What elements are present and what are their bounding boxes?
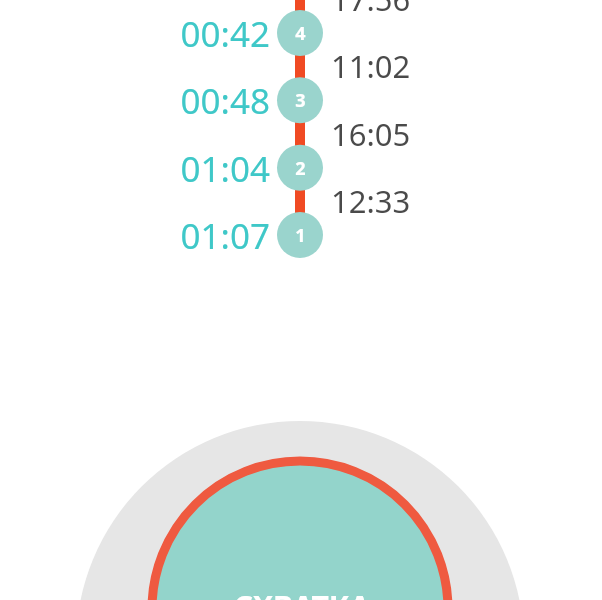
staticText: 2 xyxy=(295,156,306,180)
button[interactable]: 3 xyxy=(280,88,320,112)
staticText: 16:05 xyxy=(331,113,411,155)
staticText: 01:07 xyxy=(180,212,270,258)
staticText: 01:04 xyxy=(180,145,270,191)
button[interactable]: 00:42 xyxy=(90,10,270,56)
button[interactable]: 16:05 xyxy=(331,113,491,155)
button[interactable]: 00:48 xyxy=(90,77,270,123)
staticText: 11:02 xyxy=(331,45,411,87)
button[interactable]: 01:04 xyxy=(90,145,270,191)
button[interactable]: Схватка dial xyxy=(0,0,602,600)
button[interactable]: 17:56 xyxy=(331,0,491,20)
staticText: СХВАТКА xyxy=(202,586,402,600)
staticText: 4 xyxy=(295,21,306,45)
staticText: 3 xyxy=(295,88,306,112)
staticText: 17:56 xyxy=(331,0,411,20)
button[interactable]: 2 xyxy=(280,156,320,180)
button[interactable]: 12:33 xyxy=(331,180,491,222)
button[interactable]: 01:07 xyxy=(90,212,270,258)
button[interactable]: 4 xyxy=(280,21,320,45)
staticText: 1 xyxy=(295,223,306,247)
staticText: 12:33 xyxy=(331,180,411,222)
button[interactable]: 1 xyxy=(280,223,320,247)
staticText: 00:42 xyxy=(180,10,270,56)
staticText: 00:48 xyxy=(180,77,270,123)
button[interactable]: 11:02 xyxy=(331,45,491,87)
